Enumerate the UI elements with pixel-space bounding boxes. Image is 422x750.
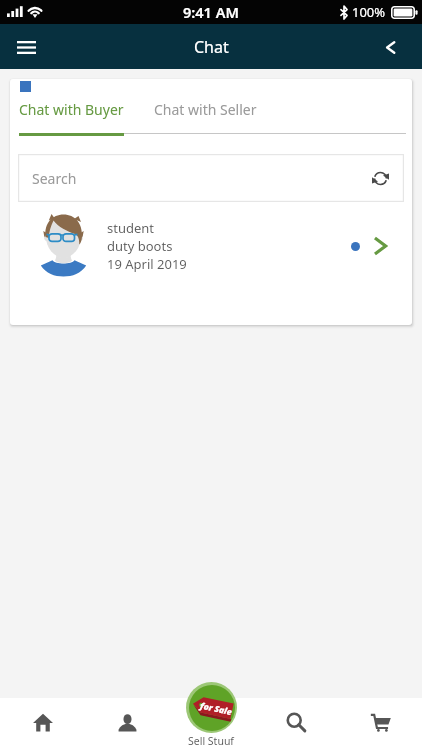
- button[interactable]: Home: [0, 698, 85, 750]
- staticText: 100%: [352, 3, 386, 21]
- staticText: Chat with Buyer: [19, 100, 124, 119]
- staticText: for Sale: [199, 700, 234, 718]
- staticText: duty boots: [107, 237, 173, 255]
- staticText: 19 April 2019: [107, 255, 187, 273]
- button[interactable]: Refresh: [367, 165, 393, 191]
- button[interactable]: Chat with Seller: [154, 100, 274, 119]
- button[interactable]: Menu: [4, 25, 48, 69]
- button[interactable]: Chat with Buyer: [19, 100, 124, 119]
- staticText: Chat: [194, 36, 229, 58]
- staticText: student: [107, 219, 155, 237]
- staticText: Chat with Seller: [154, 100, 257, 119]
- button[interactable]: Search: [254, 698, 338, 750]
- staticText: Sell Stuuf: [188, 734, 234, 748]
- button[interactable]: Sell Stuuf: [186, 682, 237, 733]
- button[interactable]: student: [10, 215, 412, 277]
- staticText: 9:41 AM: [183, 2, 239, 22]
- button[interactable]: Profile: [85, 698, 170, 750]
- button[interactable]: Cart: [338, 698, 422, 750]
- staticText: Search: [32, 169, 77, 188]
- button[interactable]: Search: [18, 154, 404, 202]
- button[interactable]: Back: [368, 25, 412, 69]
